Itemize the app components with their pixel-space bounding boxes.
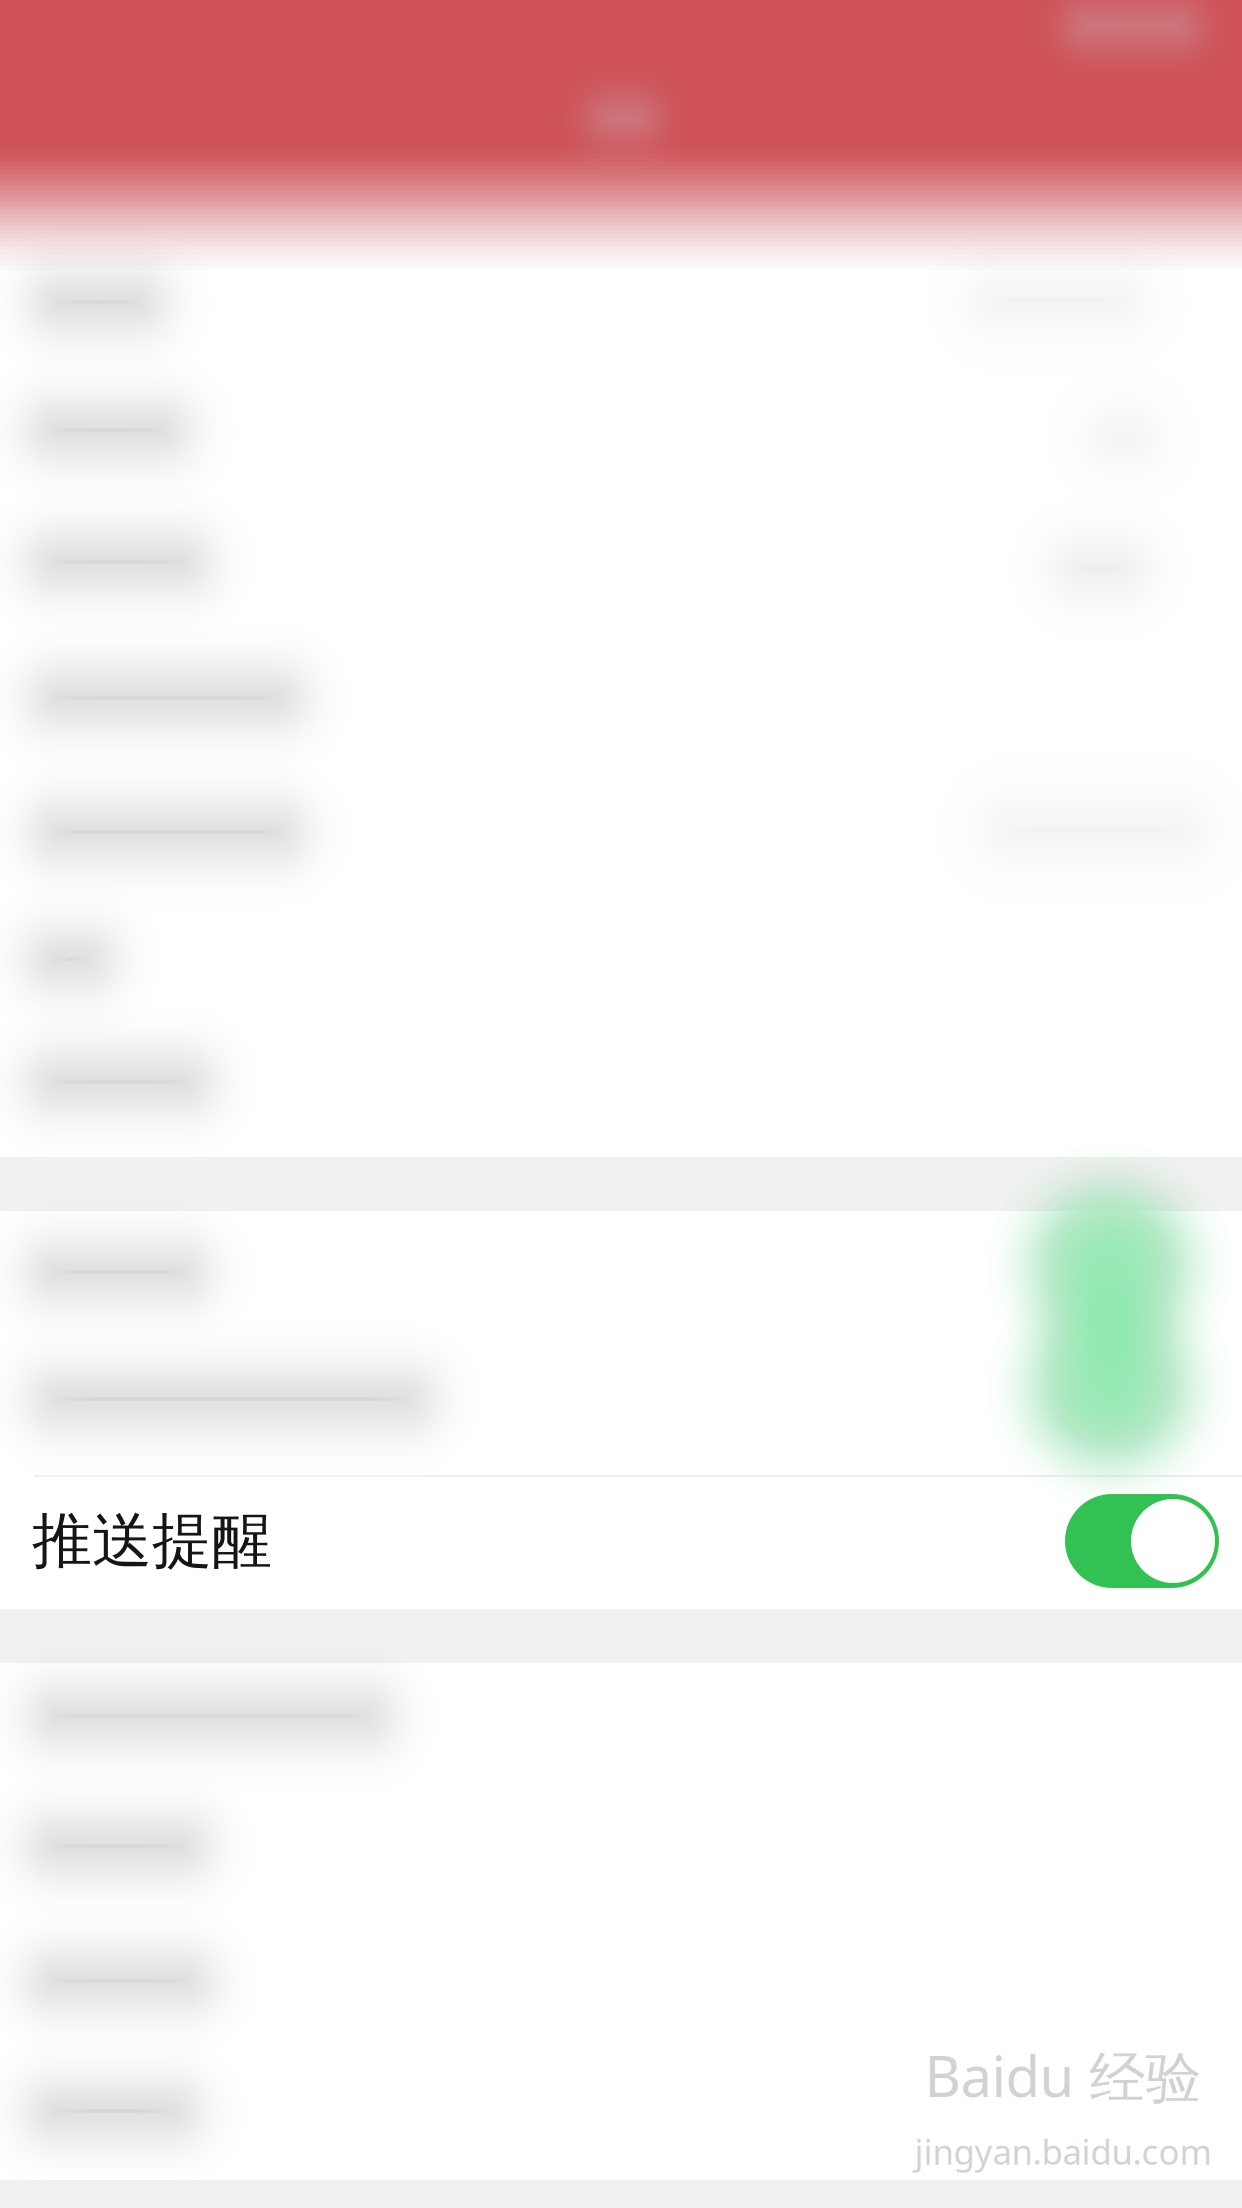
button[interactable]: Setting 3 [0, 502, 1242, 633]
staticText: jingyan.baidu.com [914, 2128, 1211, 2175]
staticText: Baidu 经验 [924, 2037, 1201, 2114]
button[interactable]: Setting 1 [0, 240, 1242, 371]
button[interactable]: Setting 9 [0, 1785, 1242, 1916]
button[interactable]: Setting 5 [0, 764, 1242, 895]
button[interactable]: 推送提醒 [0, 1474, 1242, 1607]
button[interactable]: Setting 7 [0, 1026, 1242, 1157]
button[interactable]: Toggle 2 [0, 1337, 1242, 1468]
button[interactable]: Setting 6 [0, 895, 1242, 1026]
button[interactable]: Toggle 1 [0, 1206, 1242, 1337]
button[interactable]: Setting 8 [0, 1654, 1242, 1785]
button[interactable]: Setting 10 [0, 1916, 1242, 2047]
staticText: 推送提醒 [32, 1503, 272, 1579]
button[interactable]: Setting 11 [0, 2047, 1242, 2178]
button[interactable]: Setting 4 [0, 633, 1242, 764]
button[interactable]: Setting 2 [0, 371, 1242, 502]
